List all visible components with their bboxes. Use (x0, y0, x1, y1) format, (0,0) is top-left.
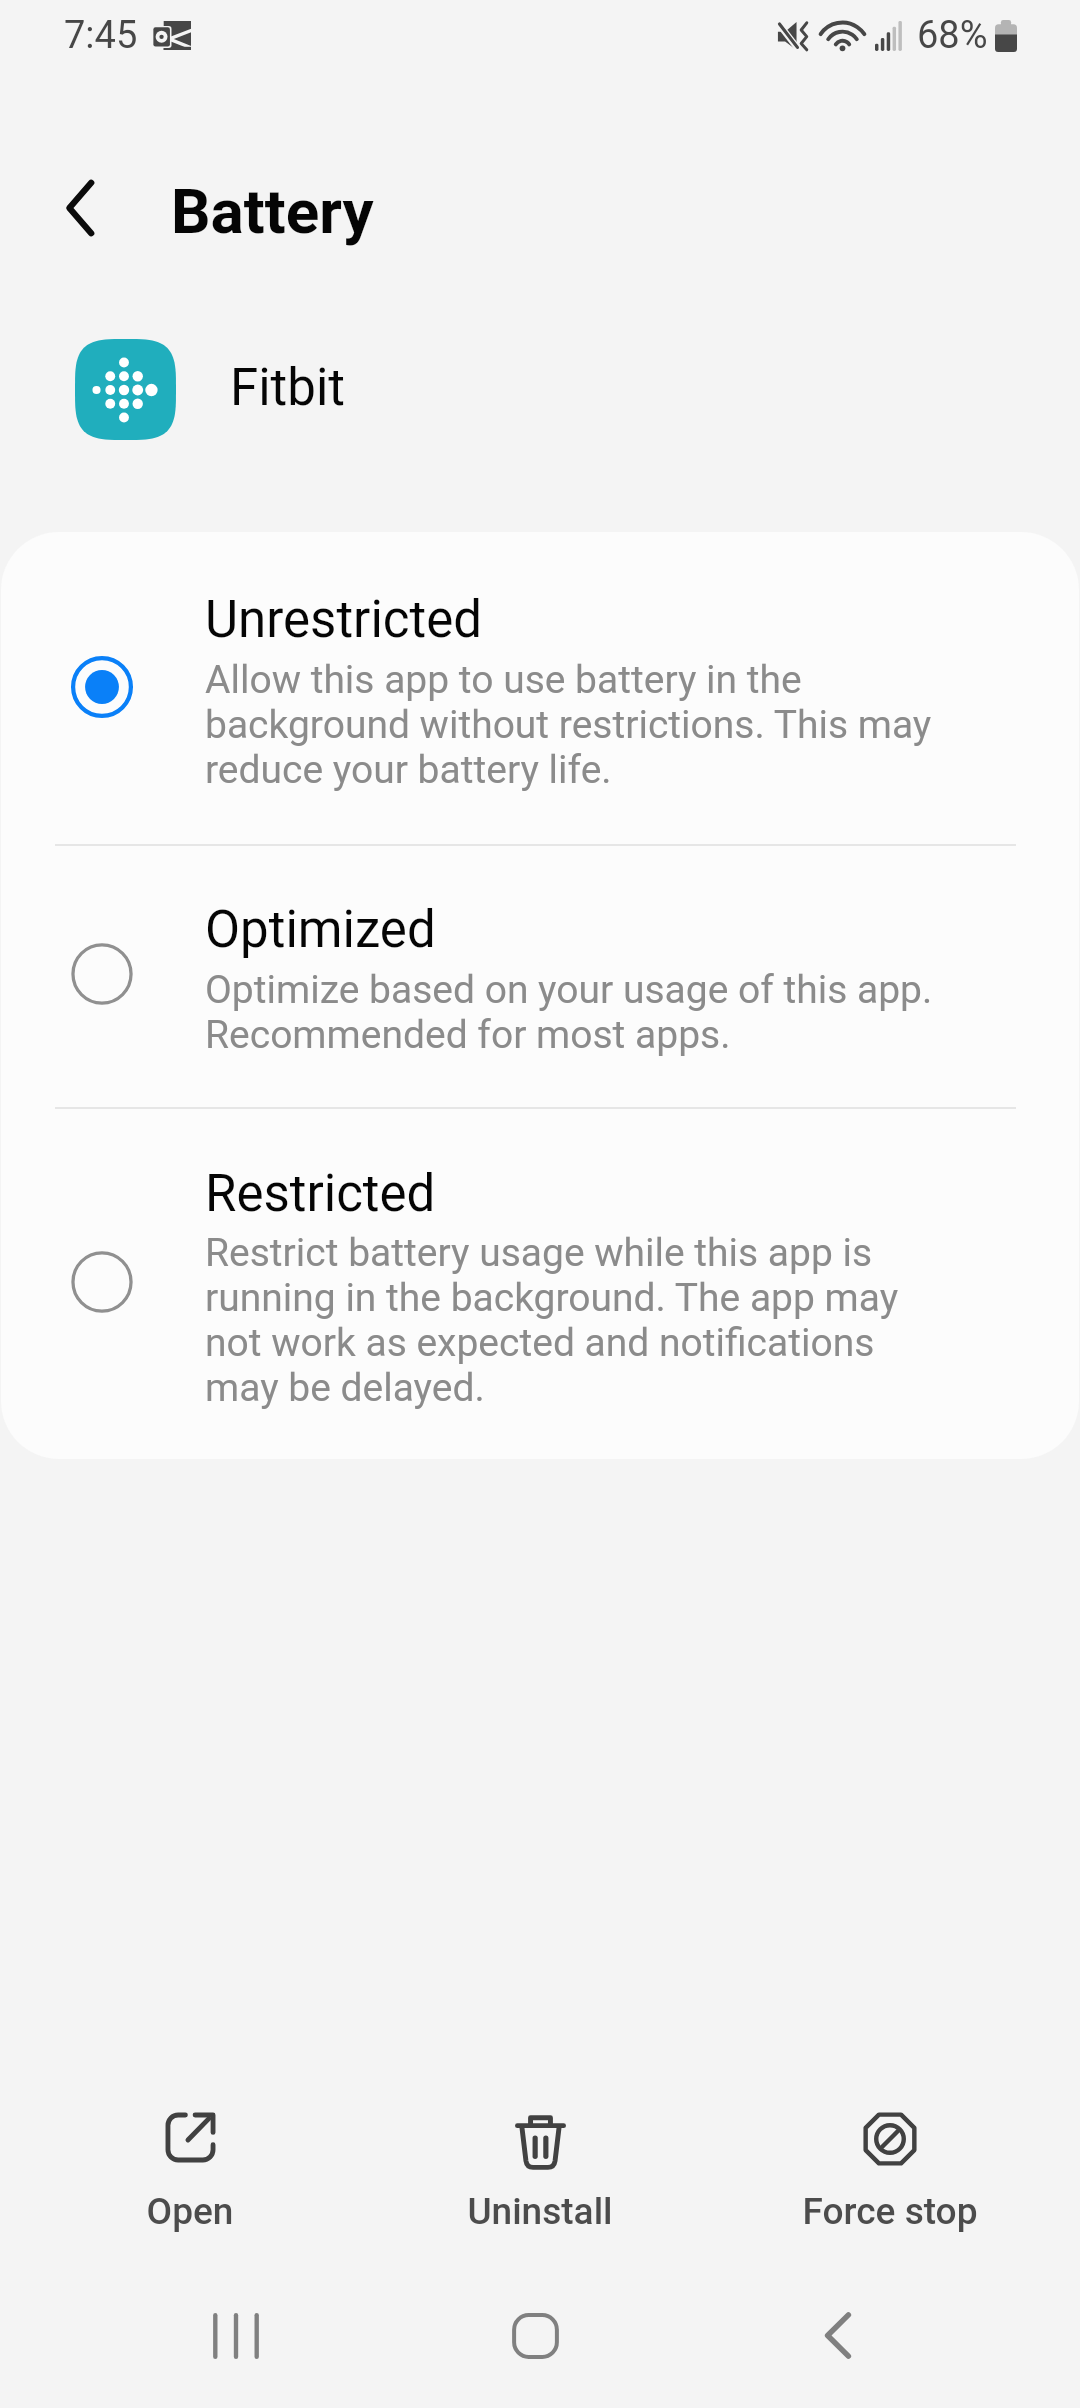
staticText: 7:45 (64, 13, 138, 58)
staticText: Optimize based on your usage of this app… (205, 967, 933, 1012)
staticText: Restrict battery usage while this app is (205, 1230, 873, 1275)
button[interactable]: Home (455, 2288, 615, 2408)
staticText: 68% (917, 13, 988, 58)
button[interactable]: Restricted (1, 1105, 1079, 1459)
staticText: Restricted (205, 1164, 436, 1224)
staticText: Uninstall (370, 2190, 710, 2233)
staticText: reduce your battery life. (205, 747, 612, 792)
button[interactable]: Optimized (1, 839, 1079, 1105)
staticText: Unrestricted (205, 590, 482, 650)
staticText: background without restrictions. This ma… (205, 702, 932, 747)
staticText: Fitbit (230, 358, 345, 418)
button[interactable]: Recent apps (156, 2288, 316, 2408)
staticText: Battery (171, 175, 374, 248)
staticText: Force stop (720, 2190, 1060, 2233)
staticText: Recommended for most apps. (205, 1012, 731, 1057)
button[interactable]: Back (758, 2288, 918, 2408)
staticText: not work as expected and notifications (205, 1320, 875, 1365)
staticText: Optimized (205, 900, 436, 960)
button[interactable]: Navigate up (36, 164, 124, 252)
staticText: running in the background. The app may (205, 1275, 899, 1320)
staticText: may be delayed. (205, 1365, 485, 1410)
staticText: Allow this app to use battery in the (205, 657, 802, 702)
button[interactable]: Open (20, 2082, 360, 2254)
button[interactable]: Force stop (720, 2082, 1060, 2254)
staticText: Open (20, 2190, 360, 2233)
button[interactable]: Unrestricted (1, 532, 1079, 839)
button[interactable]: Uninstall (370, 2082, 710, 2254)
